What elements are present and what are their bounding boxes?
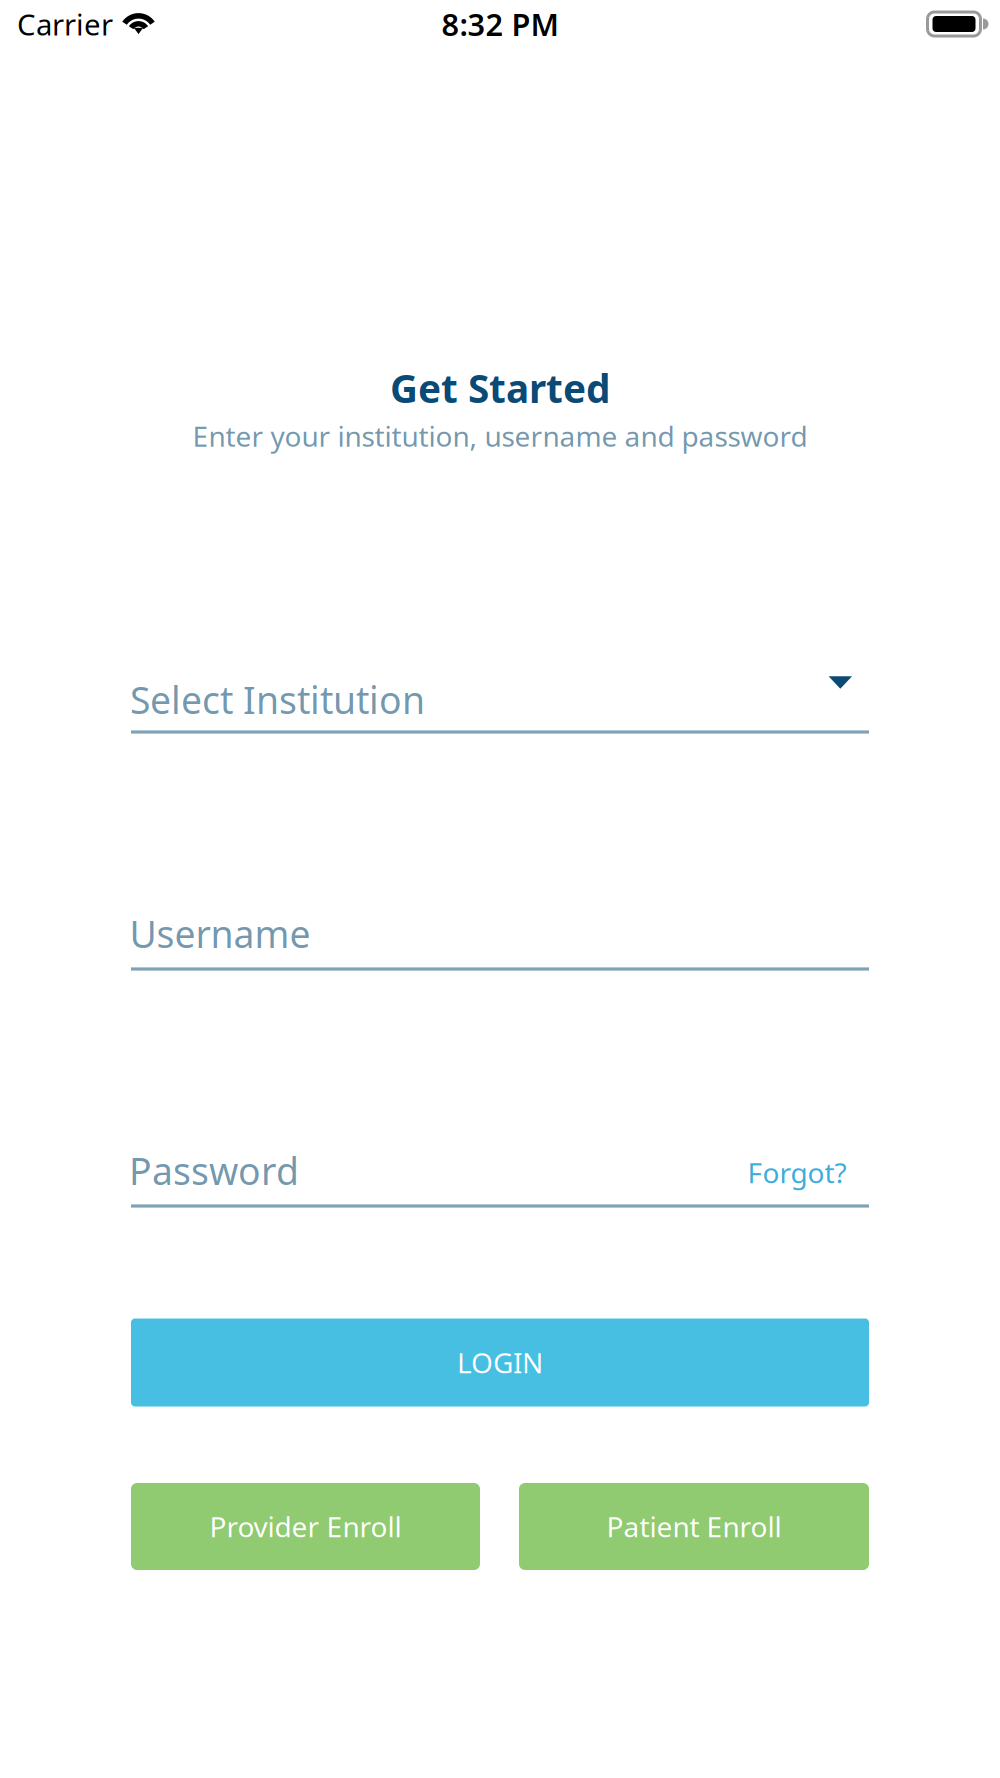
button[interactable]: Patient Enroll (519, 1483, 869, 1570)
staticText: 8:32 PM (441, 4, 558, 44)
staticText: Forgot? (747, 1154, 846, 1191)
button[interactable]: Provider Enroll (131, 1483, 480, 1570)
staticText: Password (129, 1146, 299, 1195)
button[interactable]: Username (131, 882, 869, 970)
staticText: Username (129, 909, 310, 958)
button[interactable]: Forgot? (742, 1150, 852, 1194)
staticText: Carrier (17, 4, 113, 43)
staticText: Get Started (390, 362, 610, 414)
staticText: Patient Enroll (606, 1508, 781, 1545)
button[interactable]: Password (131, 1119, 691, 1207)
button[interactable]: LOGIN (131, 1318, 869, 1406)
staticText: Select Institution (130, 675, 425, 724)
staticText: Provider Enroll (209, 1508, 401, 1545)
button[interactable]: Select Institution (131, 645, 869, 733)
staticText: Enter your institution, username and pas… (192, 417, 807, 455)
staticText: LOGIN (457, 1344, 543, 1381)
